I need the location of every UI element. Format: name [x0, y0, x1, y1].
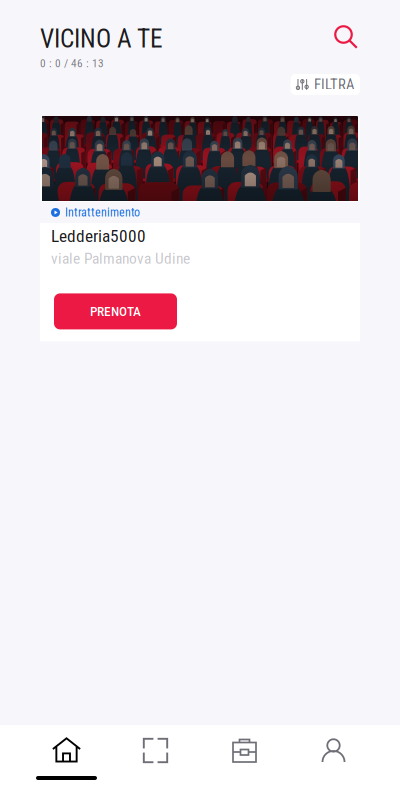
button[interactable]: Home: [22, 737, 111, 798]
staticText: viale Palmanova Udine: [51, 249, 190, 267]
button[interactable]: Cerca: [329, 24, 363, 54]
staticText: Intrattenimento: [65, 205, 140, 219]
staticText: FILTRA: [314, 76, 354, 93]
button[interactable]: PRENOTA: [54, 293, 177, 329]
button[interactable]: Eventi: [200, 737, 289, 798]
button[interactable]: Scansiona: [111, 737, 200, 798]
button[interactable]: Profilo: [289, 737, 378, 798]
button[interactable]: FILTRA: [291, 74, 360, 95]
staticText: PRENOTA: [90, 304, 141, 319]
staticText: VICINO A TE: [40, 24, 163, 54]
staticText: Ledderia5000: [51, 226, 146, 246]
staticText: 0 : 0 / 46 : 13: [40, 57, 104, 70]
